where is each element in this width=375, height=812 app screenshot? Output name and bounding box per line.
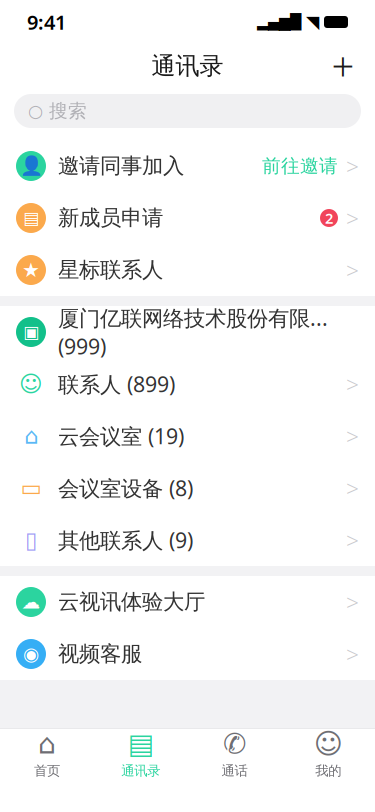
button[interactable]: ▤ [94,729,188,778]
button[interactable]: 👤 [0,140,375,192]
staticText: ▯ [25,527,37,553]
staticText: 通讯录 [151,51,223,81]
staticText: > [346,639,359,669]
button[interactable]: ☺ [281,729,375,778]
staticText: 联系人 (899) [58,370,175,398]
staticText: 视频客服 [58,641,142,667]
staticText: ☁ [21,591,40,613]
button[interactable]: ○ [14,94,361,128]
staticText: ☺ [19,371,43,397]
staticText: ▂▄▆█ [257,14,301,30]
staticText: > [346,203,359,233]
staticText: ⌂ [38,728,56,760]
button[interactable]: ⌂ [0,410,375,462]
staticText: 前往邀请 [262,154,338,177]
staticText: 会议室设备 (8) [58,474,193,502]
staticText: ⌂ [24,423,38,449]
button[interactable]: ▣ [0,306,375,358]
staticText: 首页 [34,763,60,779]
staticText: ★ [22,259,40,281]
staticText: 9:41 [27,9,66,35]
staticText: > [346,473,359,503]
staticText: ○ [28,101,43,121]
button[interactable]: ▯ [0,514,375,566]
staticText: 通讯录 [121,763,160,779]
button[interactable]: ☁ [0,576,375,628]
button[interactable]: ☺ [0,358,375,410]
staticText: ◉ [23,643,39,665]
button[interactable]: ✆ [187,729,281,778]
staticText: ✆ [223,728,246,760]
button[interactable]: ◉ [0,628,375,680]
staticText: ▭ [20,475,41,501]
button[interactable]: ▭ [0,462,375,514]
staticText: ▤ [128,728,154,760]
button[interactable]: ★ [0,244,375,296]
staticText: > [346,255,359,285]
button[interactable]: 添加 [321,44,365,88]
staticText: 云会议室 (19) [58,422,184,450]
staticText: > [346,421,359,451]
staticText: + [331,39,354,92]
staticText: ☺ [314,728,343,760]
staticText: 邀请同事加入 [58,153,184,179]
staticText: 云视讯体验大厅 [58,589,205,615]
staticText: 厦门亿联网络技术股份有限...(999) [58,304,328,360]
staticText: 星标联系人 [58,257,163,283]
staticText: 新成员申请 [58,205,163,231]
staticText: > [346,151,359,181]
staticText: 👤 [19,155,42,177]
button[interactable]: ⌂ [0,729,94,778]
staticText: > [346,525,359,555]
staticText: ▣ [23,322,39,342]
staticText: 2 [325,208,333,228]
staticText: ▤ [23,208,39,228]
button[interactable]: ▤ [0,192,375,244]
staticText: > [346,587,359,617]
staticText: 其他联系人 (9) [58,526,193,554]
staticText: 搜索 [49,99,87,122]
staticText: > [346,369,359,399]
staticText: ◥ [306,12,319,32]
staticText: 我的 [315,763,341,779]
staticText: 通话 [221,763,247,779]
